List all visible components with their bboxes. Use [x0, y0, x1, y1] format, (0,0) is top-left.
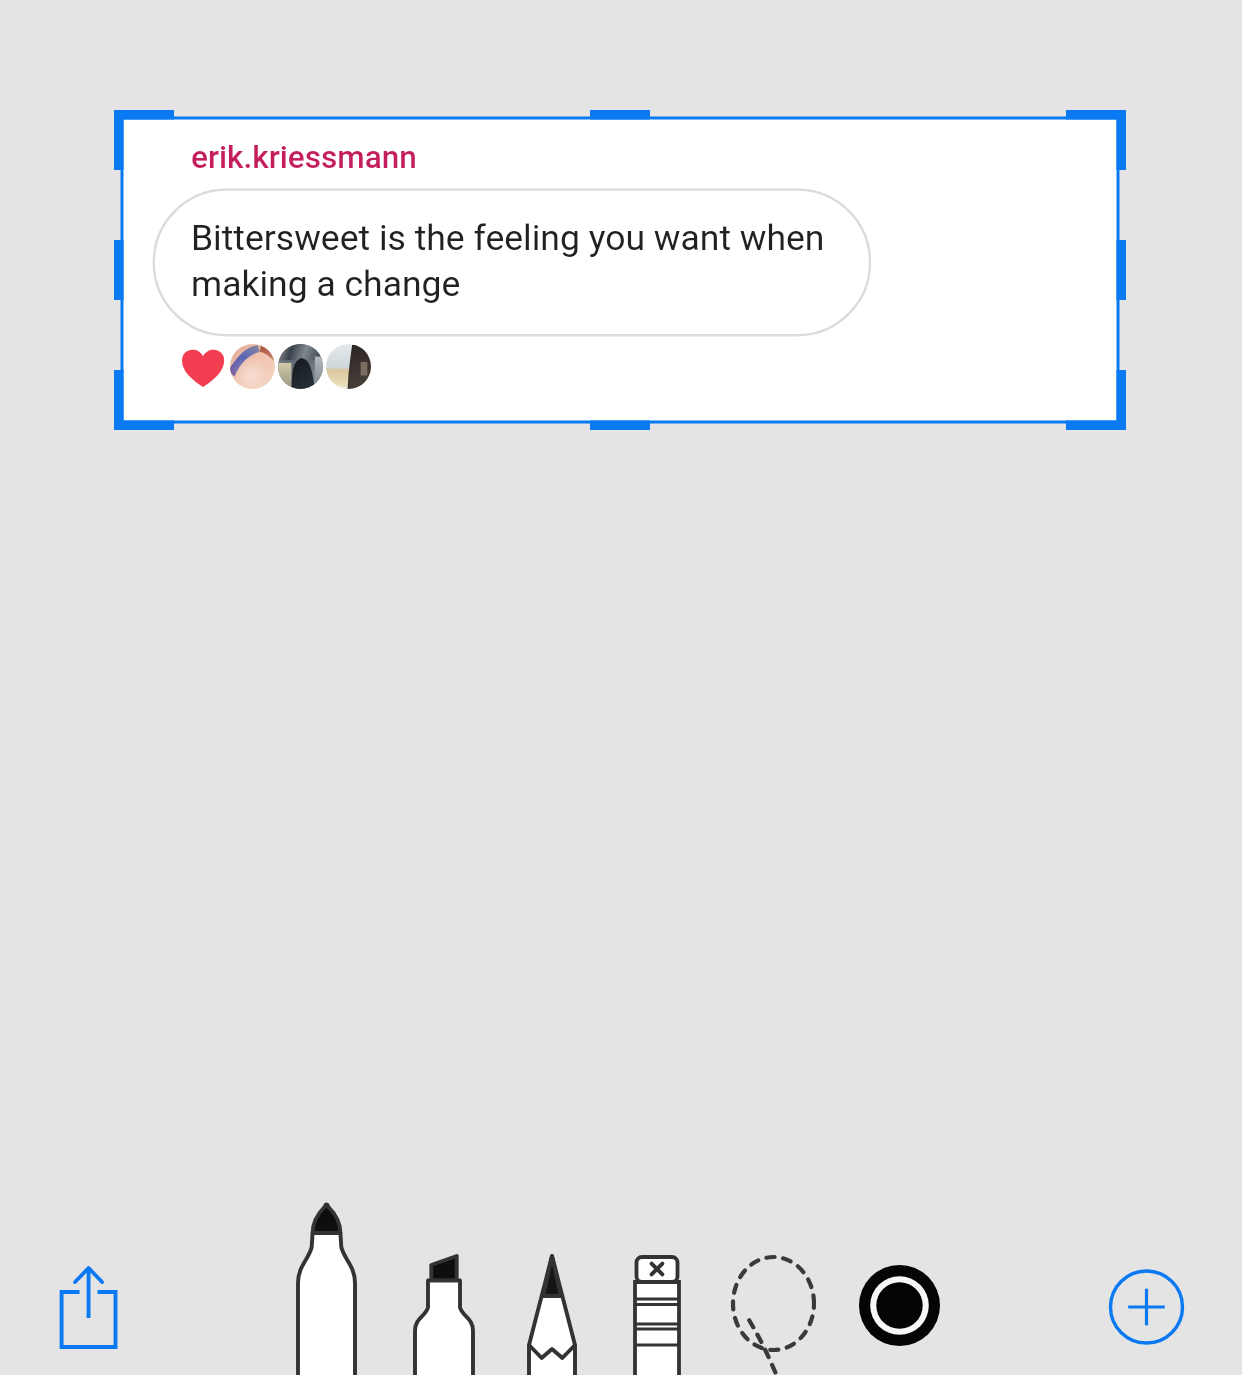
- button[interactable]: Share: [36, 1258, 141, 1363]
- button[interactable]: Highlighter: [404, 1246, 484, 1375]
- button[interactable]: Reaction from user 2: [275, 341, 326, 392]
- button[interactable]: Reaction from user 1: [227, 341, 278, 392]
- button[interactable]: Eraser: [625, 1248, 689, 1375]
- button[interactable]: Lasso select: [716, 1246, 832, 1375]
- button[interactable]: Like: [176, 342, 230, 394]
- button[interactable]: Reaction from user 3: [323, 341, 374, 392]
- button[interactable]: Pen: [286, 1194, 368, 1375]
- button[interactable]: Selected sticker from erik.kriessmann: [112, 108, 1128, 432]
- button[interactable]: Add: [1097, 1258, 1196, 1357]
- button[interactable]: Colour: black: [850, 1256, 949, 1355]
- button[interactable]: Pencil: [518, 1246, 586, 1375]
